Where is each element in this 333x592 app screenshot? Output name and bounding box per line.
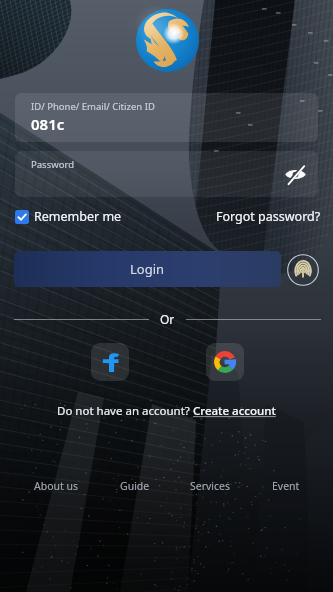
staticText: Login [130, 260, 165, 278]
staticText: ID/ Phone/ Email/ Citizen ID [31, 100, 155, 113]
staticText: Password [31, 158, 74, 171]
button[interactable]: Fingerprint login [285, 252, 320, 287]
button[interactable]: Remember me [15, 205, 122, 228]
button[interactable]: Show password [280, 159, 310, 189]
button[interactable]: Forgot password? [216, 205, 321, 228]
button[interactable]: Event [272, 479, 300, 493]
button[interactable]: Guide [120, 479, 150, 493]
button[interactable]: ID/ Phone/ Email/ Citizen ID [15, 93, 318, 142]
staticText: 081c [31, 114, 65, 134]
staticText: Or [160, 311, 175, 327]
button[interactable]: Login [14, 251, 281, 287]
button[interactable]: Login with Facebook [91, 343, 129, 381]
button[interactable]: About us [34, 479, 79, 493]
button[interactable]: Create account [193, 403, 276, 419]
button[interactable]: Login with Google [206, 343, 244, 381]
staticText: Do not have an account? [57, 403, 193, 419]
staticText: Remember me [34, 208, 122, 225]
button[interactable]: Services [190, 479, 231, 493]
button[interactable]: Password [15, 151, 318, 197]
